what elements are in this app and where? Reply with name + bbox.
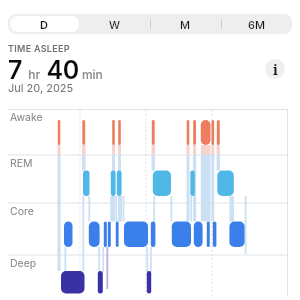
staticText: Awake bbox=[10, 111, 43, 124]
staticText: TIME ASLEEP bbox=[8, 43, 70, 54]
staticText: i bbox=[273, 60, 278, 79]
staticText: D bbox=[40, 18, 48, 31]
staticText: Jul 20, 2025 bbox=[8, 81, 74, 94]
staticText: Core bbox=[10, 205, 34, 218]
button[interactable]: D bbox=[8, 14, 79, 34]
staticText: Deep bbox=[10, 257, 37, 270]
button[interactable]: 6M bbox=[221, 14, 292, 34]
button[interactable]: W bbox=[79, 14, 150, 34]
staticText: REM bbox=[10, 157, 33, 170]
staticText: M bbox=[180, 18, 191, 31]
staticText: 6M bbox=[248, 18, 265, 31]
staticText: W bbox=[109, 18, 121, 31]
button[interactable]: i bbox=[265, 59, 285, 79]
button[interactable]: M bbox=[150, 14, 221, 34]
staticText: 7 hr 40 min bbox=[8, 55, 103, 85]
